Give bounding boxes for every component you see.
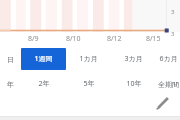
staticText: 2年 <box>38 79 50 89</box>
staticText: 全期間 <box>158 80 179 89</box>
staticText: 5年 <box>83 79 95 89</box>
staticText: 3 <box>171 30 175 38</box>
staticText: 8/10 <box>66 34 81 44</box>
button[interactable]: 日 <box>0 46 21 72</box>
button[interactable]: 5年 <box>66 72 111 96</box>
staticText: 8/15 <box>146 34 161 44</box>
button[interactable]: 全期間 <box>156 72 180 96</box>
staticText: 3 <box>171 8 175 16</box>
staticText: 日 <box>7 55 14 64</box>
staticText: 1週間 <box>34 54 53 64</box>
staticText: 6カ月 <box>159 54 178 64</box>
staticText: 1カ月 <box>79 54 98 64</box>
button[interactable]: 1カ月 <box>66 46 111 72</box>
button[interactable]: Edit <box>152 92 174 114</box>
staticText: 8/9 <box>28 34 39 44</box>
button[interactable]: 3カ月 <box>111 46 156 72</box>
staticText: 8/12 <box>107 34 122 44</box>
button[interactable]: 10年 <box>111 72 156 96</box>
button[interactable]: 6カ月 <box>156 46 180 72</box>
button[interactable]: 2年 <box>21 72 66 96</box>
button[interactable]: 年 <box>0 72 21 96</box>
button[interactable]: 1週間 <box>21 46 66 72</box>
staticText: 年 <box>7 80 14 89</box>
staticText: 10年 <box>126 79 142 89</box>
staticText: 3カ月 <box>124 54 143 64</box>
